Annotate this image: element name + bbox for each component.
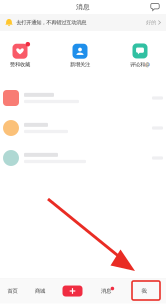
staticText: 好的 [146,19,156,26]
staticText: 评论和@ [130,61,150,68]
button[interactable] [0,143,166,173]
button[interactable]: 新增关注 [60,42,100,69]
button[interactable]: 评论和@ [120,42,160,69]
button[interactable]: Post [55,278,90,303]
staticText: 赞和收藏 [10,61,30,68]
button[interactable]: 首页 [0,278,25,303]
button[interactable]: 商城 [25,278,55,303]
staticText: 商城 [35,288,45,294]
button[interactable]: 赞和收藏 [0,42,40,69]
staticText: 新增关注 [70,61,90,68]
button[interactable]: Chats [148,0,162,13]
button[interactable] [0,113,166,143]
staticText: 消息 [101,288,111,294]
button[interactable]: 消息 [90,278,122,303]
staticText: 我 [141,288,146,294]
staticText: 首页 [7,288,17,294]
staticText: 消息 [76,3,90,11]
button[interactable]: 我 [122,278,166,303]
button[interactable]: 去打开通知，不再错过互动消息 [0,14,166,31]
staticText: 去打开通知，不再错过互动消息 [16,19,86,26]
button[interactable] [0,83,166,113]
